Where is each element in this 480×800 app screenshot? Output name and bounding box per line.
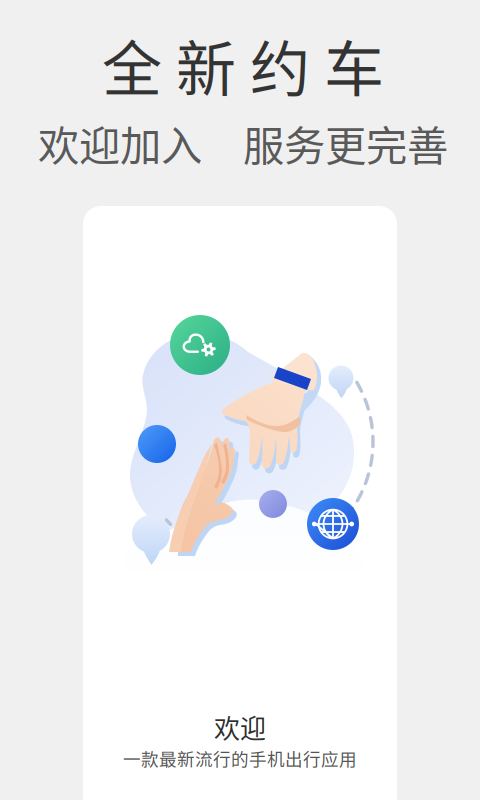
staticText: 一款最新流行的手机出行应用 xyxy=(123,745,357,771)
staticText: 欢迎加入 服务更完善 xyxy=(38,113,448,173)
staticText: 欢迎 xyxy=(214,708,266,746)
staticText: 全新约车 xyxy=(102,22,384,108)
